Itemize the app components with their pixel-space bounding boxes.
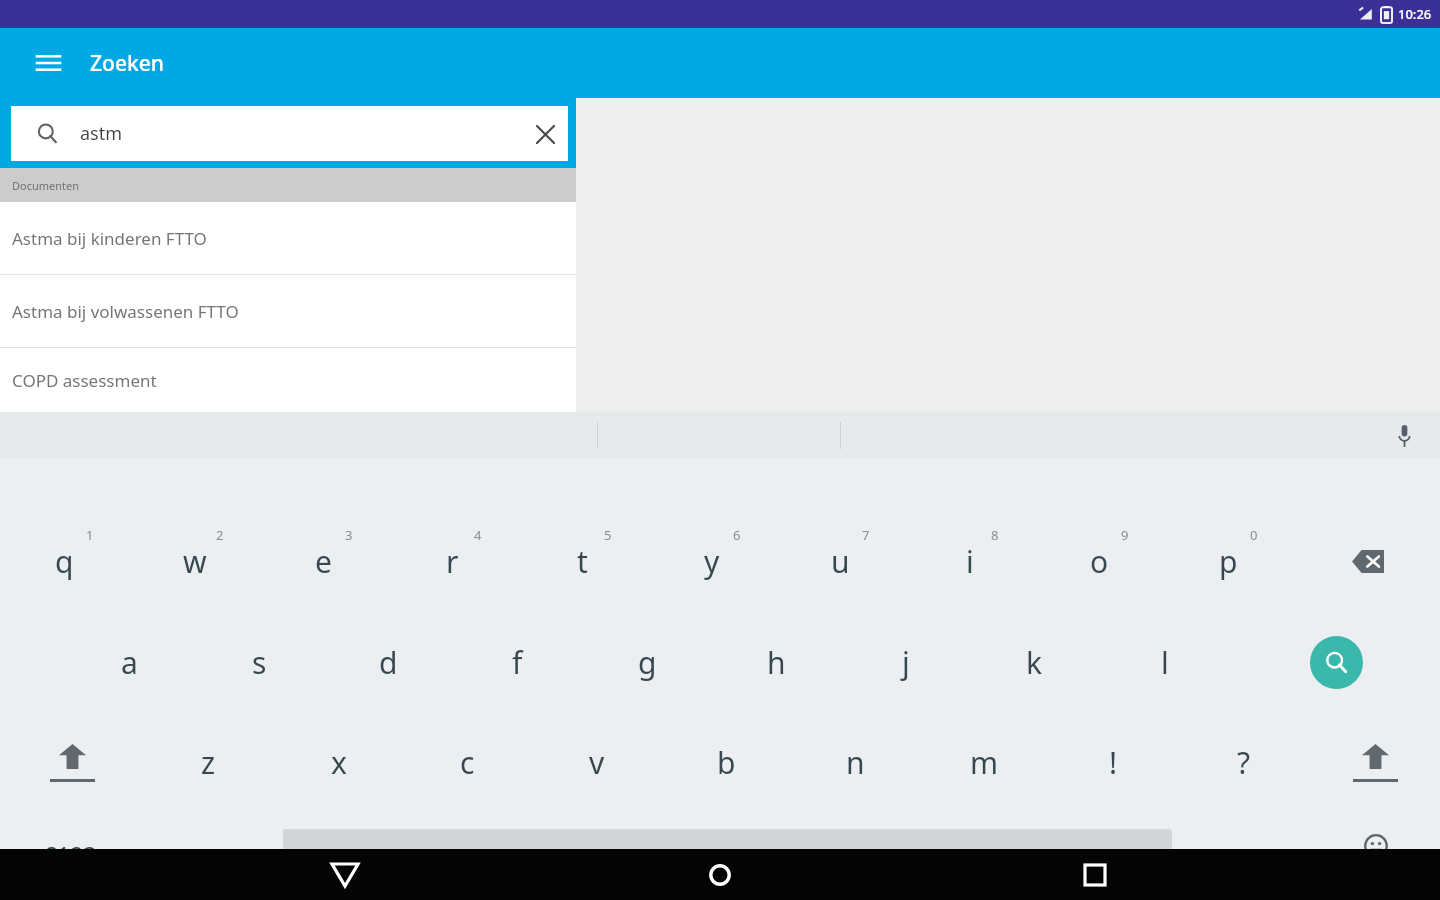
button[interactable]: d	[324, 614, 453, 711]
staticText: g	[638, 642, 657, 683]
button[interactable]: p	[1164, 509, 1293, 606]
staticText: o	[1090, 541, 1109, 582]
staticText: z	[201, 742, 216, 783]
staticText: l	[1161, 642, 1169, 683]
button[interactable]: m	[920, 714, 1049, 811]
staticText: e	[315, 541, 332, 582]
button[interactable]: f	[453, 614, 582, 711]
button[interactable]: astm	[11, 106, 568, 161]
button[interactable]: z	[144, 714, 273, 811]
staticText: 1	[86, 526, 94, 544]
button[interactable]: a	[65, 614, 194, 711]
staticText: y	[704, 541, 720, 582]
staticText: 2	[216, 526, 224, 544]
button[interactable]: ,	[145, 814, 273, 894]
staticText: ?	[1237, 742, 1251, 783]
staticText: .	[1242, 829, 1250, 867]
button[interactable]: Open navigation menu	[28, 43, 68, 83]
staticText: v	[589, 742, 605, 783]
button[interactable]: n	[791, 714, 920, 811]
button[interactable]: COPD assessment	[0, 348, 576, 412]
button[interactable]: y	[647, 509, 776, 606]
staticText: 4	[474, 526, 482, 544]
button[interactable]: .	[1182, 814, 1310, 894]
button[interactable]: w	[130, 509, 259, 606]
staticText: m	[970, 742, 999, 783]
staticText: !	[1109, 742, 1118, 783]
staticText: 9	[1121, 526, 1129, 544]
staticText: p	[1219, 541, 1238, 582]
staticText: c	[460, 742, 475, 783]
button[interactable]: Recent apps	[1065, 849, 1125, 900]
button[interactable]: Astma bij kinderen FTTO	[0, 202, 576, 274]
staticText: 3	[345, 526, 353, 544]
button[interactable]: x	[274, 714, 403, 811]
button[interactable]: l	[1100, 614, 1229, 711]
staticText: astm	[80, 121, 123, 146]
staticText: 8	[991, 526, 999, 544]
staticText: Documenten	[12, 178, 80, 193]
staticText: 5	[604, 526, 612, 544]
staticText: ,	[205, 831, 213, 869]
button[interactable]: k	[970, 614, 1099, 711]
button[interactable]: Voice input	[1384, 416, 1424, 456]
staticText: k	[1026, 642, 1043, 683]
staticText: b	[717, 742, 736, 783]
button[interactable]: j	[841, 614, 970, 711]
button[interactable]: Back	[315, 849, 375, 900]
staticText: f	[512, 642, 523, 683]
button[interactable]: Search	[1271, 614, 1401, 711]
staticText: Astma bij kinderen FTTO	[12, 227, 207, 250]
button[interactable]: r	[388, 509, 517, 606]
staticText: COPD assessment	[12, 369, 157, 392]
staticText: n	[846, 742, 865, 783]
staticText: t	[577, 541, 588, 582]
button[interactable]: Shift	[8, 714, 136, 811]
button[interactable]: !	[1049, 714, 1178, 811]
button[interactable]: v	[532, 714, 661, 811]
staticText: 6	[733, 526, 741, 544]
button[interactable]: s	[195, 614, 324, 711]
staticText: Astma bij volwassenen FTTO	[12, 300, 239, 323]
button[interactable]: Emoji	[1312, 814, 1440, 894]
staticText: d	[379, 642, 398, 683]
staticText: i	[966, 541, 974, 582]
staticText: 7	[862, 526, 870, 544]
button[interactable]: q	[0, 509, 129, 606]
staticText: u	[831, 541, 850, 582]
staticText: ?123	[47, 839, 97, 870]
button[interactable]: t	[518, 509, 647, 606]
staticText: x	[331, 742, 347, 783]
button[interactable]: i	[905, 509, 1034, 606]
staticText: q	[55, 541, 74, 582]
staticText: r	[446, 541, 459, 582]
staticText: w	[183, 541, 207, 582]
button[interactable]: ?123	[8, 814, 136, 894]
staticText: Zoeken	[90, 49, 164, 78]
staticText: s	[252, 642, 267, 683]
button[interactable]: h	[712, 614, 841, 711]
button[interactable]: o	[1035, 509, 1164, 606]
button[interactable]: Clear search query	[522, 111, 568, 157]
staticText: j	[902, 642, 910, 683]
button[interactable]: Backspace	[1303, 509, 1433, 606]
staticText: 0	[1250, 526, 1258, 544]
button[interactable]: b	[662, 714, 791, 811]
button[interactable]: Shift	[1311, 714, 1439, 811]
staticText: h	[767, 642, 786, 683]
button[interactable]: e	[259, 509, 388, 606]
button[interactable]: Astma bij volwassenen FTTO	[0, 275, 576, 347]
button[interactable]: c	[403, 714, 532, 811]
button[interactable]: g	[583, 614, 712, 711]
staticText: a	[121, 642, 138, 683]
button[interactable]: u	[776, 509, 905, 606]
button[interactable]: Space	[283, 814, 1172, 894]
button[interactable]: Home	[690, 849, 750, 900]
staticText: 10:26	[1398, 5, 1432, 23]
button[interactable]: ?	[1179, 714, 1308, 811]
